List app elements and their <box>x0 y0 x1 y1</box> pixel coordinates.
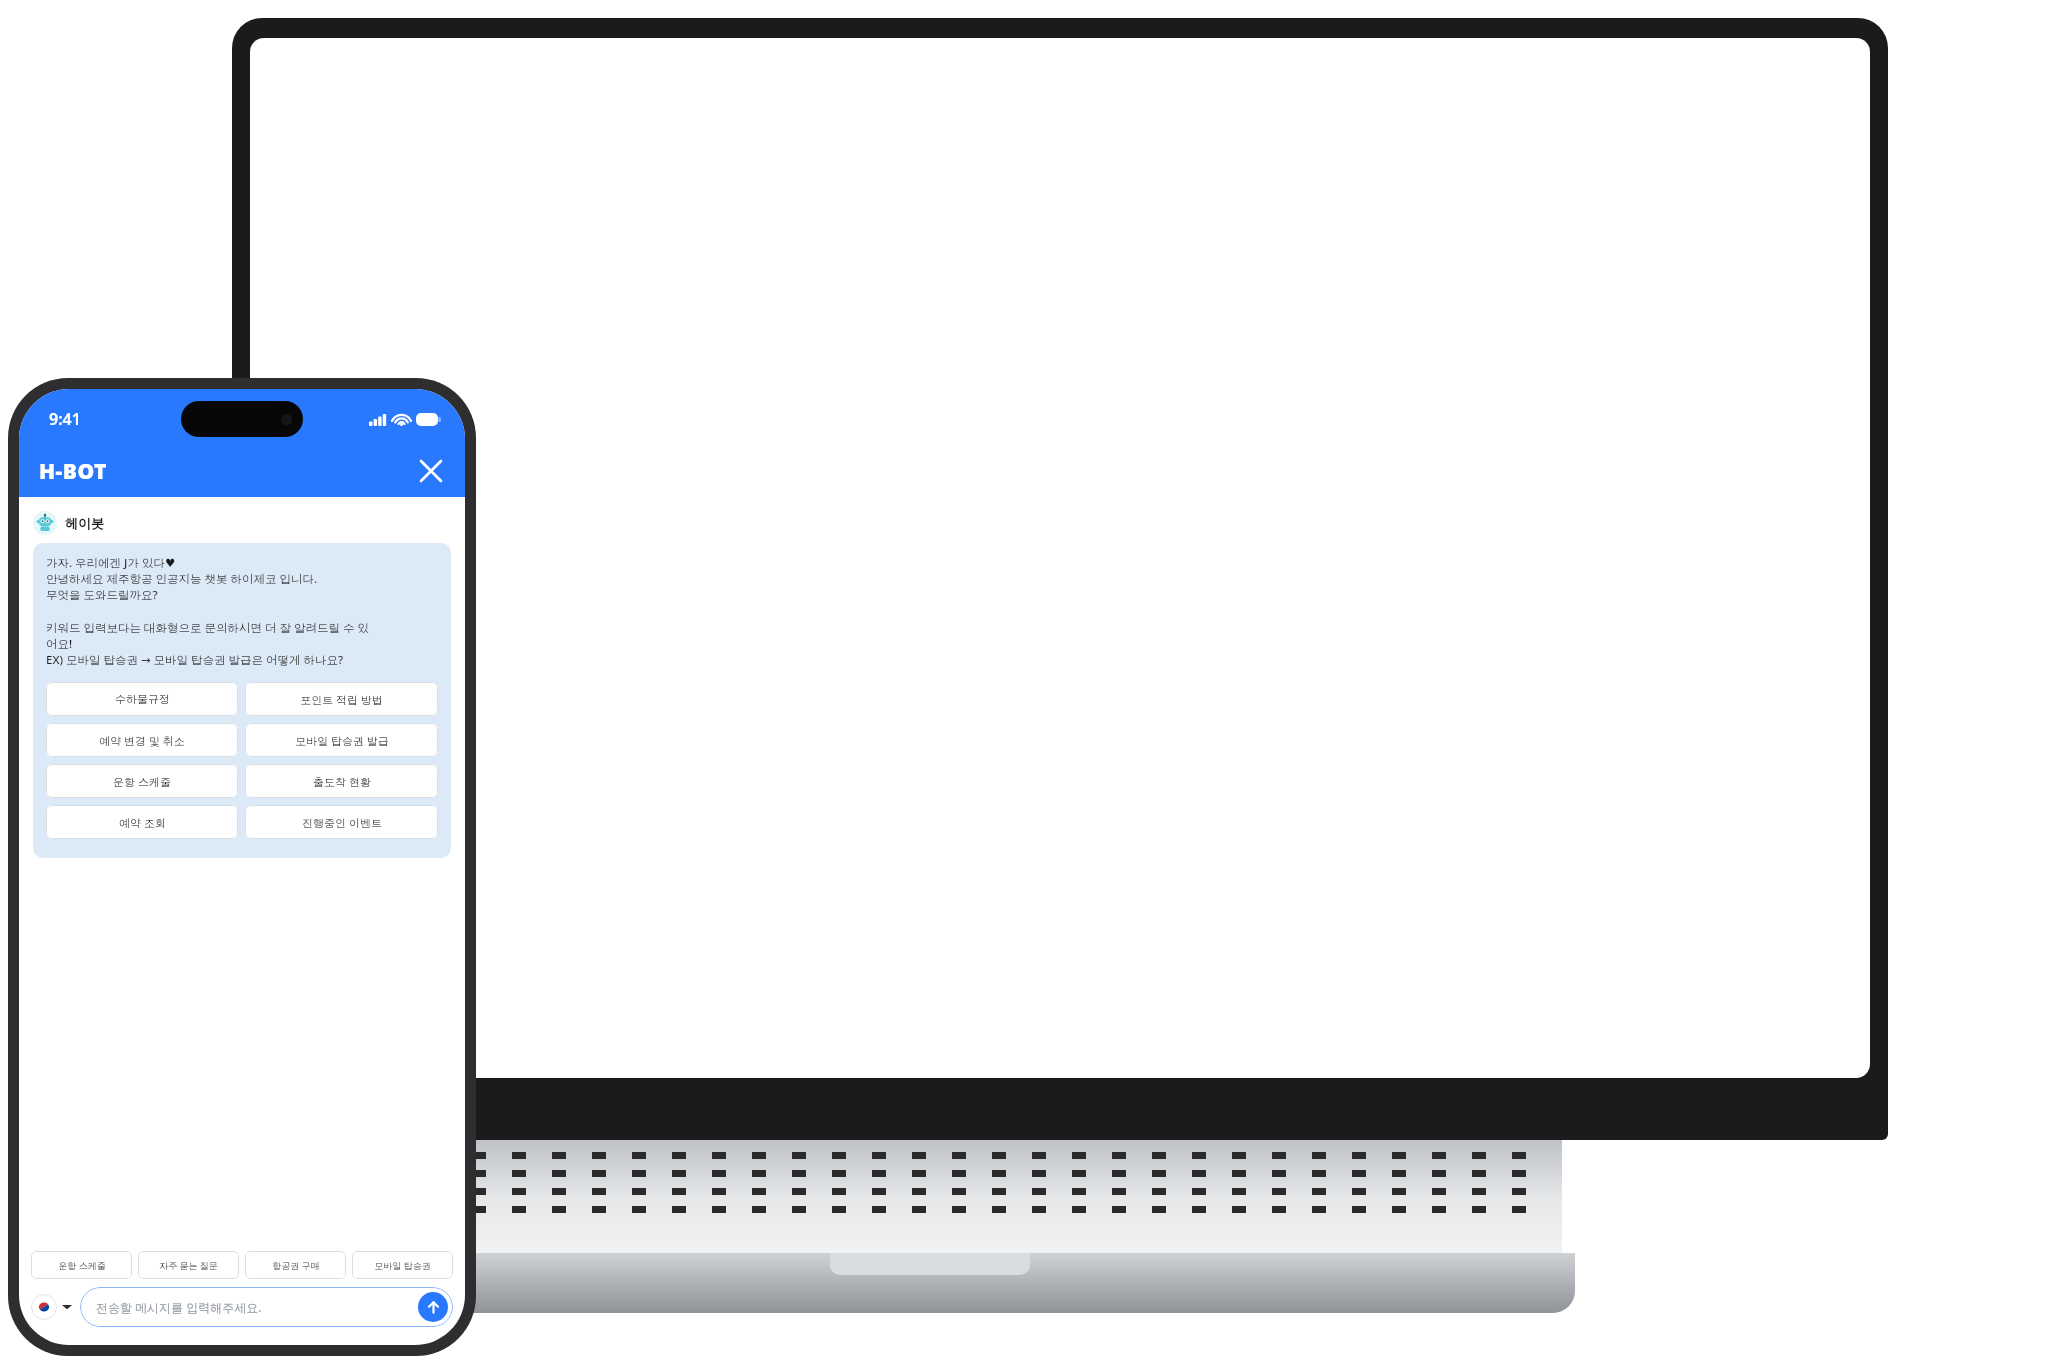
button[interactable]: Language <box>31 1294 57 1320</box>
staticText: 모바일 탑승권 발급 <box>295 733 389 748</box>
staticText: 수하물규정 <box>115 692 170 706</box>
button[interactable]: 예약 조회 <box>46 805 238 839</box>
staticText: EX) 모바일 탑승권 → 모바일 탑승권 발급은 어떻게 하나요? <box>46 652 344 668</box>
staticText: 운항 스케줄 <box>113 774 171 789</box>
button[interactable]: Select language <box>62 1302 72 1312</box>
button[interactable]: 모바일 탑승권 <box>352 1251 453 1279</box>
staticText: 무엇을 도와드릴까요? <box>46 587 158 603</box>
staticText: 포인트 적립 방법 <box>300 692 383 707</box>
button[interactable]: 항공권 구매 <box>245 1251 346 1279</box>
button[interactable]: 운항 스케줄 <box>46 764 238 798</box>
button[interactable]: 수하물규정 <box>46 682 238 716</box>
button[interactable]: Close <box>411 451 451 491</box>
button[interactable]: 운항 스케줄 <box>31 1251 132 1279</box>
staticText: 어요! <box>46 636 73 652</box>
staticText: 키워드 입력보다는 대화형으로 문의하시면 더 잘 알려드릴 수 있 <box>46 620 369 636</box>
button[interactable]: 포인트 적립 방법 <box>245 682 438 716</box>
staticText: 예약 변경 및 취소 <box>99 733 185 748</box>
staticText: 운항 스케줄 <box>58 1259 106 1271</box>
staticText: 전송할 메시지를 입력해주세요. <box>96 1299 262 1315</box>
button[interactable]: 진행중인 이벤트 <box>245 805 438 839</box>
button[interactable]: 출도착 현황 <box>245 764 438 798</box>
staticText: 헤이봇 <box>65 515 104 531</box>
staticText: 9:41 <box>49 408 81 430</box>
staticText: 자주 묻는 질문 <box>159 1259 218 1271</box>
staticText: 예약 조회 <box>119 815 166 830</box>
staticText: 진행중인 이벤트 <box>302 815 382 830</box>
staticText: 가자. 우리에겐 J가 있다♥ <box>46 555 176 571</box>
staticText: 출도착 현황 <box>313 774 371 789</box>
button[interactable]: 예약 변경 및 취소 <box>46 723 238 757</box>
staticText: 모바일 탑승권 <box>374 1259 431 1271</box>
button[interactable]: 전송할 메시지를 입력해주세요. <box>80 1287 453 1327</box>
button[interactable]: 자주 묻는 질문 <box>138 1251 239 1279</box>
staticText: H-BOT <box>39 457 107 486</box>
button[interactable]: 모바일 탑승권 발급 <box>245 723 438 757</box>
staticText: 안녕하세요 제주항공 인공지능 챗봇 하이제코 입니다. <box>46 571 318 587</box>
button[interactable]: Send <box>418 1292 448 1322</box>
staticText: 항공권 구매 <box>272 1259 320 1271</box>
